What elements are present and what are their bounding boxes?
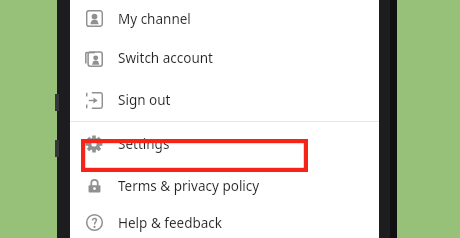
staticText: Sign out — [118, 91, 171, 109]
staticText: Terms & privacy policy — [118, 177, 260, 195]
staticText: Switch account — [118, 49, 213, 67]
other: Settings highlight — [81, 139, 308, 172]
button[interactable]: Terms & privacy policy — [70, 165, 379, 207]
button[interactable]: Switch account — [70, 37, 379, 79]
button[interactable]: Settings — [70, 122, 379, 165]
staticText: Settings — [118, 135, 170, 153]
button[interactable]: My channel — [70, 0, 379, 37]
staticText: My channel — [118, 10, 191, 28]
button[interactable]: Sign out — [70, 79, 379, 121]
button[interactable]: Help & feedback — [70, 207, 379, 238]
staticText: Help & feedback — [118, 214, 223, 232]
